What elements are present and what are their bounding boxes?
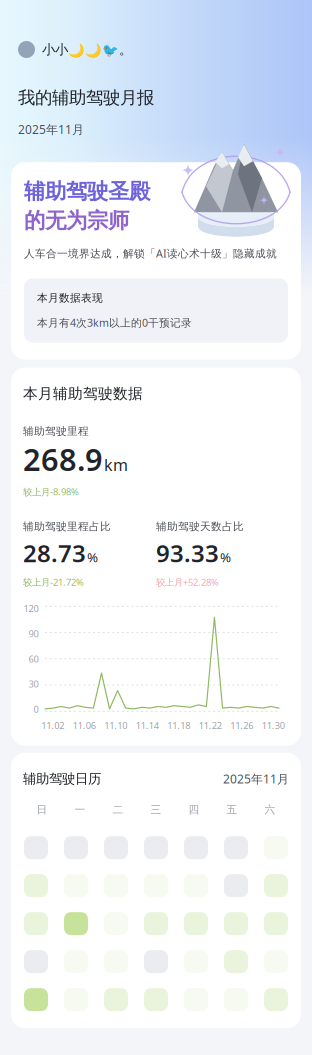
button[interactable]: Day: [56, 912, 96, 935]
staticText: 较上月+52.28%: [156, 576, 219, 588]
button[interactable]: Day: [56, 988, 96, 1011]
staticText: 本月有4次3km以上的0干预记录: [37, 315, 192, 330]
button[interactable]: Day: [256, 912, 296, 935]
staticText: 11.30: [262, 719, 285, 732]
button[interactable]: Day: [96, 874, 136, 897]
button[interactable]: Day: [16, 912, 56, 935]
staticText: 30: [28, 678, 38, 690]
staticText: 我的辅助驾驶月报: [18, 87, 154, 108]
staticText: 三: [150, 803, 161, 816]
button[interactable]: Day: [176, 874, 216, 897]
button[interactable]: Day: [176, 912, 216, 935]
button[interactable]: Day: [216, 836, 256, 859]
button[interactable]: Day: [176, 988, 216, 1011]
staticText: 11.14: [136, 719, 159, 732]
button[interactable]: Day: [56, 950, 96, 973]
staticText: 11.02: [41, 719, 64, 732]
button[interactable]: Day: [136, 912, 176, 935]
staticText: 11.06: [73, 719, 96, 732]
button[interactable]: Day: [16, 836, 56, 859]
button[interactable]: 小小🌙🌙🐦。: [0, 37, 142, 62]
button[interactable]: Day: [256, 836, 296, 859]
staticText: %: [87, 548, 98, 566]
staticText: 120: [23, 602, 38, 615]
staticText: 本月数据表现: [37, 291, 103, 304]
staticText: 小小🌙🌙🐦。: [42, 41, 132, 58]
button[interactable]: Day: [96, 988, 136, 1011]
staticText: 60: [28, 653, 38, 665]
button[interactable]: Day: [176, 950, 216, 973]
staticText: 日: [36, 803, 47, 816]
staticText: 2025年11月: [18, 121, 84, 137]
button[interactable]: Day: [16, 988, 56, 1011]
button[interactable]: Day: [96, 836, 136, 859]
button[interactable]: Day: [96, 950, 136, 973]
staticText: 268.9: [23, 439, 103, 479]
staticText: 四: [188, 803, 199, 816]
staticText: 辅助驾驶里程占比: [23, 520, 111, 533]
button[interactable]: Day: [256, 950, 296, 973]
button[interactable]: Day: [256, 988, 296, 1011]
button[interactable]: Day: [136, 836, 176, 859]
staticText: 较上月-21.72%: [23, 576, 84, 588]
staticText: 93.33: [156, 537, 219, 569]
button[interactable]: Day: [216, 874, 256, 897]
button[interactable]: Day: [16, 950, 56, 973]
staticText: 本月辅助驾驶数据: [23, 385, 143, 403]
staticText: 28.73: [23, 537, 86, 569]
staticText: 辅助驾驶日历: [23, 771, 101, 787]
button[interactable]: Day: [216, 950, 256, 973]
staticText: 辅助驾驶圣殿: [24, 178, 150, 204]
staticText: 人车合一境界达成，解锁「AI读心术十级」隐藏成就: [24, 246, 277, 260]
staticText: 11.18: [167, 719, 190, 732]
button[interactable]: Day: [256, 874, 296, 897]
staticText: 11.22: [199, 719, 222, 732]
staticText: 辅助驾驶天数占比: [156, 520, 244, 533]
button[interactable]: Day: [176, 836, 216, 859]
staticText: 辅助驾驶里程: [23, 425, 89, 438]
button[interactable]: Day: [56, 874, 96, 897]
button[interactable]: Day: [216, 988, 256, 1011]
button[interactable]: Day: [16, 874, 56, 897]
button[interactable]: Day: [96, 912, 136, 935]
staticText: 90: [28, 627, 38, 640]
button[interactable]: Day: [136, 950, 176, 973]
staticText: 2025年11月: [223, 771, 289, 787]
staticText: 较上月-8.98%: [23, 485, 79, 498]
staticText: 的无为宗师: [24, 207, 129, 234]
button[interactable]: Day: [136, 988, 176, 1011]
button[interactable]: Day: [136, 874, 176, 897]
staticText: 二: [112, 803, 123, 816]
button[interactable]: Day: [56, 836, 96, 859]
staticText: 11.26: [230, 719, 253, 732]
staticText: 六: [264, 803, 275, 816]
staticText: 0: [33, 703, 38, 715]
staticText: %: [220, 548, 231, 566]
staticText: km: [104, 454, 128, 475]
staticText: 五: [226, 803, 237, 816]
staticText: 11.10: [104, 719, 127, 732]
staticText: 一: [74, 803, 85, 816]
button[interactable]: Day: [216, 912, 256, 935]
